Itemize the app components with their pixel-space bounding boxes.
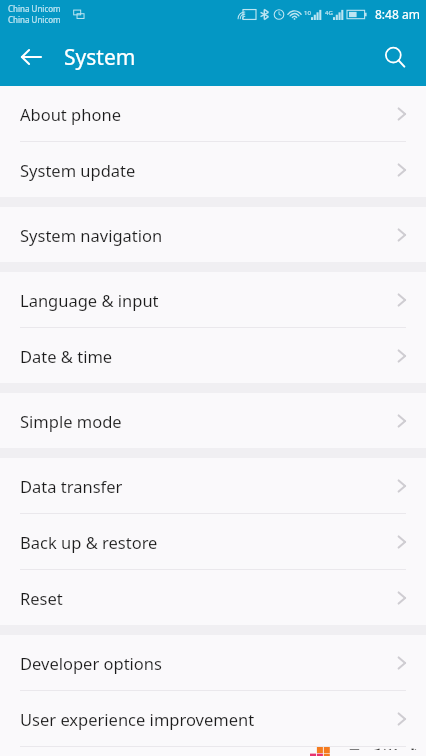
button[interactable]: Back: [8, 34, 54, 80]
staticText: About phone: [20, 103, 396, 125]
button[interactable]: User experience improvement: [0, 691, 426, 746]
staticText: System navigation: [20, 224, 396, 246]
staticText: China Unicom: [8, 14, 61, 25]
button[interactable]: System update: [0, 142, 426, 197]
button[interactable]: Back up & restore: [0, 514, 426, 569]
staticText: 10: [304, 9, 311, 17]
staticText: 8:48 am: [375, 6, 420, 22]
button[interactable]: Data transfer: [0, 458, 426, 513]
staticText: System update: [20, 159, 396, 181]
staticText: Language & input: [20, 289, 396, 311]
button[interactable]: Reset: [0, 570, 426, 625]
staticText: Simple mode: [20, 410, 396, 432]
button[interactable]: About phone: [0, 86, 426, 141]
staticText: Back up & restore: [20, 531, 396, 553]
button[interactable]: System navigation: [0, 207, 426, 262]
staticText: Data transfer: [20, 475, 396, 497]
button[interactable]: Developer options: [0, 635, 426, 690]
staticText: User experience improvement: [20, 708, 396, 730]
staticText: Date & time: [20, 345, 396, 367]
button[interactable]: Language & input: [0, 272, 426, 327]
staticText: China Unicom: [8, 3, 61, 14]
button[interactable]: Search: [372, 34, 418, 80]
button[interactable]: Simple mode: [0, 393, 426, 448]
staticText: 4G: [325, 9, 333, 17]
staticText: Reset: [20, 587, 396, 609]
button[interactable]: Date & time: [0, 328, 426, 383]
staticText: Developer options: [20, 652, 396, 674]
staticText: System: [64, 43, 136, 72]
staticText: 鼎乐游戏: [344, 747, 420, 750]
